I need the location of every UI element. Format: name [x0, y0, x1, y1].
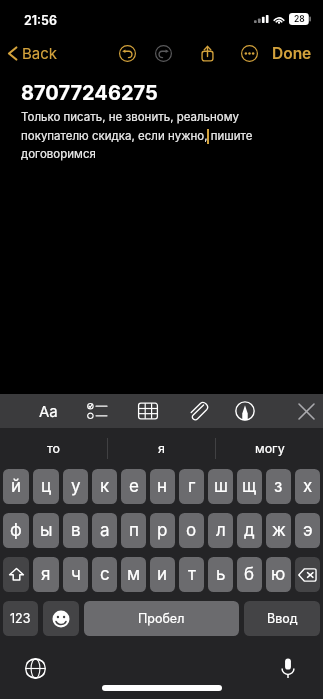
- button[interactable]: я: [108, 428, 215, 469]
- staticText: Done: [272, 44, 312, 63]
- staticText: Ввод: [267, 611, 298, 626]
- staticText: з: [274, 476, 283, 497]
- button[interactable]: Share: [195, 41, 219, 65]
- button[interactable]: Done: [272, 44, 312, 63]
- button[interactable]: Globe: [22, 655, 48, 681]
- button[interactable]: с: [92, 557, 117, 592]
- staticText: щ: [242, 476, 257, 497]
- button[interactable]: ц: [33, 469, 59, 504]
- button[interactable]: х: [295, 469, 320, 504]
- button[interactable]: Ввод: [244, 601, 320, 636]
- button[interactable]: п: [121, 513, 146, 548]
- staticText: т: [188, 564, 196, 585]
- staticText: 21:56: [24, 13, 57, 28]
- staticText: ы: [40, 520, 53, 541]
- staticText: г: [188, 476, 196, 497]
- staticText: х: [303, 476, 313, 497]
- button[interactable]: Back: [7, 44, 58, 62]
- staticText: Back: [22, 44, 58, 62]
- staticText: б: [244, 564, 255, 585]
- button[interactable]: л: [208, 513, 233, 548]
- button[interactable]: б: [237, 557, 262, 592]
- staticText: и: [157, 564, 168, 585]
- button[interactable]: и: [150, 557, 175, 592]
- button[interactable]: Пробел: [84, 601, 239, 636]
- staticText: ш: [214, 476, 228, 497]
- button[interactable]: ч: [63, 557, 88, 592]
- staticText: э: [303, 520, 313, 541]
- button[interactable]: Table: [133, 396, 163, 426]
- staticText: ч: [71, 564, 81, 585]
- button[interactable]: Format: [32, 396, 65, 426]
- button[interactable]: 123: [3, 601, 38, 636]
- button[interactable]: в: [63, 513, 88, 548]
- staticText: то: [47, 441, 61, 456]
- button[interactable]: Checklist: [82, 396, 112, 426]
- staticText: Aa: [39, 402, 58, 420]
- staticText: ф: [10, 520, 22, 541]
- staticText: а: [100, 520, 110, 541]
- button[interactable]: Markup: [230, 396, 260, 426]
- staticText: п: [129, 520, 139, 541]
- button[interactable]: ж: [266, 513, 291, 548]
- button[interactable]: т: [179, 557, 204, 592]
- button[interactable]: Dictate: [275, 655, 301, 681]
- button[interactable]: н: [150, 469, 175, 504]
- staticText: о: [186, 520, 197, 541]
- staticText: й: [11, 476, 22, 497]
- button[interactable]: д: [237, 513, 262, 548]
- button[interactable]: р: [150, 513, 175, 548]
- button[interactable]: я: [33, 557, 59, 592]
- staticText: Пробел: [138, 611, 185, 626]
- button[interactable]: Shift: [3, 557, 29, 592]
- staticText: л: [216, 520, 226, 541]
- button[interactable]: ы: [33, 513, 59, 548]
- staticText: ж: [272, 520, 286, 541]
- button[interactable]: More: [237, 41, 261, 65]
- button[interactable]: к: [92, 469, 117, 504]
- staticText: я: [158, 441, 165, 456]
- button[interactable]: Emoji: [43, 601, 79, 636]
- button[interactable]: Redo: [151, 41, 175, 65]
- staticText: ц: [41, 476, 52, 497]
- button[interactable]: у: [63, 469, 88, 504]
- button[interactable]: а: [92, 513, 117, 548]
- staticText: ю: [271, 564, 286, 585]
- staticText: м: [127, 564, 141, 585]
- staticText: могу: [255, 441, 285, 456]
- button[interactable]: ю: [266, 557, 291, 592]
- staticText: 123: [10, 611, 31, 626]
- button[interactable]: щ: [237, 469, 262, 504]
- button[interactable]: о: [179, 513, 204, 548]
- button[interactable]: з: [266, 469, 291, 504]
- staticText: у: [71, 476, 81, 497]
- button[interactable]: Backspace: [295, 557, 320, 592]
- staticText: Только писать, не звонить, реальному пок…: [21, 110, 253, 161]
- button[interactable]: ь: [208, 557, 233, 592]
- button[interactable]: м: [121, 557, 146, 592]
- button[interactable]: Close: [291, 396, 321, 426]
- button[interactable]: г: [179, 469, 204, 504]
- staticText: д: [244, 520, 255, 541]
- staticText: 28: [294, 14, 305, 24]
- button[interactable]: е: [121, 469, 146, 504]
- staticText: в: [71, 520, 81, 541]
- button[interactable]: Undo: [115, 41, 139, 65]
- staticText: ь: [216, 564, 226, 585]
- button[interactable]: ф: [3, 513, 29, 548]
- staticText: р: [157, 520, 168, 541]
- staticText: е: [129, 476, 139, 497]
- staticText: 87077246275: [21, 81, 158, 105]
- button[interactable]: ш: [208, 469, 233, 504]
- staticText: к: [100, 476, 110, 497]
- button[interactable]: э: [295, 513, 320, 548]
- button[interactable]: то: [0, 428, 107, 469]
- staticText: с: [100, 564, 110, 585]
- staticText: я: [41, 564, 51, 585]
- staticText: н: [157, 476, 168, 497]
- button[interactable]: Attach: [183, 396, 213, 426]
- button[interactable]: й: [3, 469, 29, 504]
- button[interactable]: могу: [216, 428, 323, 469]
